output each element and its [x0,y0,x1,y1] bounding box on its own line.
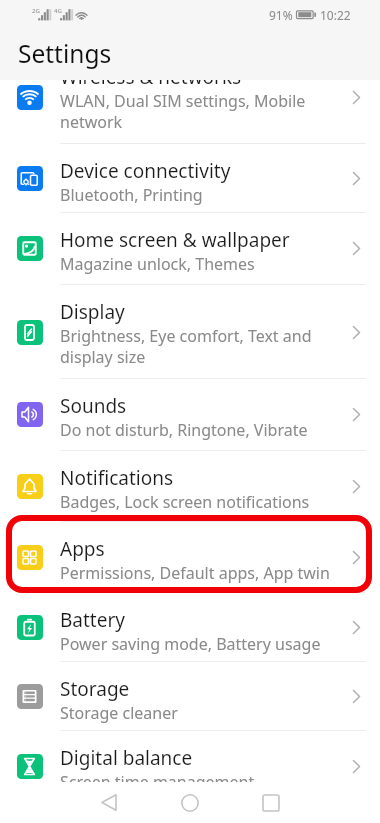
staticText: Home screen & wallpaper [60,227,290,253]
staticText: Storage [60,676,130,702]
staticText: Battery [60,607,125,633]
staticText: 2G [32,7,40,15]
staticText: Badges, Lock screen notifications [60,491,310,513]
staticText: Device connectivity [60,158,231,184]
staticText: 10:22 [320,7,351,23]
staticText: Brightness, Eye comfort, Text and displa… [60,325,345,368]
staticText: Do not disturb, Ringtone, Vibrate [60,419,308,441]
button[interactable]: Storage [0,662,380,731]
staticText: Magazine unlock, Themes [60,253,255,275]
button[interactable]: Back [84,782,132,823]
staticText: Display [60,299,125,325]
staticText: Digital balance [60,745,193,771]
staticText: 4G [54,7,62,15]
staticText: Apps [60,536,105,562]
staticText: Permissions, Default apps, App twin [60,562,330,584]
button[interactable]: Recents [247,782,295,823]
button[interactable]: Wireless & networks [0,50,380,144]
button[interactable]: Home [166,782,214,823]
staticText: Wireless & networks [60,64,242,90]
button[interactable]: Battery [0,593,380,662]
staticText: Sounds [60,393,127,419]
staticText: Power saving mode, Battery usage [60,633,321,655]
button[interactable]: Sounds [0,379,380,451]
button[interactable]: Apps [0,522,380,593]
button[interactable]: Display [0,285,380,379]
staticText: Storage cleaner [60,702,178,724]
staticText: 91% [269,7,293,23]
button[interactable]: Digital balance [0,731,380,801]
staticText: Bluetooth, Printing [60,184,203,206]
button[interactable]: Notifications [0,451,380,522]
staticText: Notifications [60,465,174,491]
staticText: Settings [18,37,112,70]
button[interactable]: Home screen & wallpaper [0,213,380,285]
staticText: Screen time management [60,771,255,793]
button[interactable]: Device connectivity [0,144,380,213]
staticText: WLAN, Dual SIM settings, Mobile network [60,90,345,133]
